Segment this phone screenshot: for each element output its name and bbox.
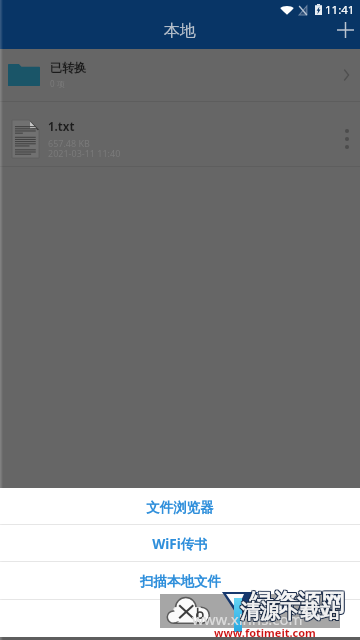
staticText: 清源下载站 [239,598,339,623]
staticText: 绿资源网 [249,589,345,619]
staticText: 清源下载站 [241,600,341,625]
staticText: 清源下载站 [240,598,340,623]
staticText: 清源下载站 [239,600,339,625]
staticText: 657.48 KB [48,137,90,149]
button[interactable]: WiFi传书 [0,525,360,561]
button[interactable]: 扫描本地文件 [0,562,360,599]
staticText: 已转换 [50,60,86,75]
staticText: 11:41 [325,2,355,18]
staticText: 2021-03-11 11:40 [48,147,121,159]
button[interactable]: Add [330,16,360,44]
staticText: 绿资源网 [249,588,345,618]
staticText: 清源下载站 [241,599,341,624]
staticText: 0 项 [50,78,65,89]
staticText: 绿资源网 [248,587,344,617]
button[interactable]: 已转换 [0,49,360,101]
staticText: 清源下载站 [241,598,341,623]
staticText: 1.txt [48,119,75,135]
staticText: 本地 [164,21,196,41]
staticText: 清源下载站 [240,600,340,625]
staticText: www.xlnns.com [192,609,303,629]
staticText: 绿资源网 [250,589,346,619]
staticText: 绿资源网 [250,588,346,618]
staticText: www.fotimeit.com [214,625,316,640]
staticText: 清源下载站 [239,599,339,624]
staticText: 绿资源网 [250,587,346,617]
staticText: 绿资源网 [249,587,345,617]
staticText: 取消 [167,611,194,628]
staticText: WiFi传书 [152,535,208,553]
button[interactable]: 1.txt [0,102,360,166]
button[interactable]: More options [334,117,360,161]
staticText: 扫描本地文件 [140,573,221,590]
staticText: 绿资源网 [248,589,344,619]
staticText: 清源下载站 [240,599,340,624]
button[interactable]: 取消 [0,600,360,637]
staticText: 文件浏览器 [146,499,214,516]
button[interactable]: 文件浏览器 [0,488,360,524]
staticText: 绿资源网 [248,588,344,618]
